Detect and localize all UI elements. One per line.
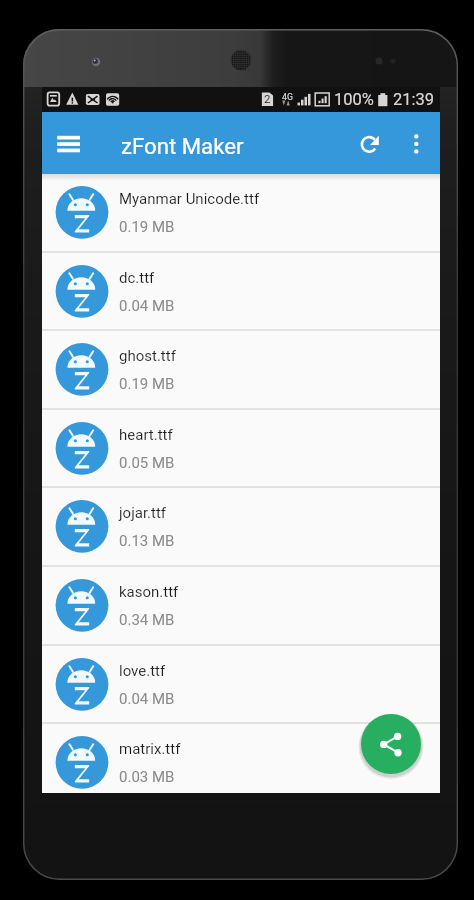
staticText: ghost.ttf [119, 347, 176, 365]
button[interactable]: ghost.ttf [42, 331, 440, 410]
staticText: Myanmar Unicode.ttf [119, 190, 260, 208]
staticText: matrix.ttf [119, 740, 181, 758]
staticText: love.ttf [119, 662, 166, 680]
button[interactable]: Refresh [346, 121, 392, 167]
staticText: 0.04 MB [119, 690, 175, 708]
button[interactable]: More options [393, 121, 439, 167]
staticText: jojar.ttf [119, 504, 167, 522]
staticText: 0.19 MB [119, 218, 175, 236]
staticText: 0.13 MB [119, 532, 175, 550]
button[interactable]: Open navigation drawer [50, 124, 97, 171]
staticText: 0.05 MB [119, 454, 175, 472]
button[interactable]: jojar.ttf [42, 488, 440, 567]
staticText: 0.03 MB [119, 768, 175, 786]
staticText: 0.04 MB [119, 297, 175, 315]
staticText: 0.19 MB [119, 375, 175, 393]
staticText: heart.ttf [119, 426, 173, 444]
button[interactable]: dc.ttf [42, 253, 440, 331]
button[interactable]: matrix.ttf [42, 724, 440, 793]
staticText: 0.34 MB [119, 611, 175, 629]
staticText: 2 [264, 92, 271, 105]
staticText: kason.ttf [119, 583, 179, 601]
button[interactable]: kason.ttf [42, 567, 440, 646]
staticText: zFont Maker [121, 133, 244, 159]
button[interactable]: heart.ttf [42, 410, 440, 488]
button[interactable]: Share [361, 714, 421, 774]
staticText: 4G [282, 92, 293, 102]
staticText: dc.ttf [119, 269, 155, 287]
staticText: 100% [334, 90, 374, 109]
button[interactable]: love.ttf [42, 646, 440, 724]
button[interactable]: Myanmar Unicode.ttf [42, 174, 440, 253]
staticText: 21:39 [393, 90, 435, 109]
